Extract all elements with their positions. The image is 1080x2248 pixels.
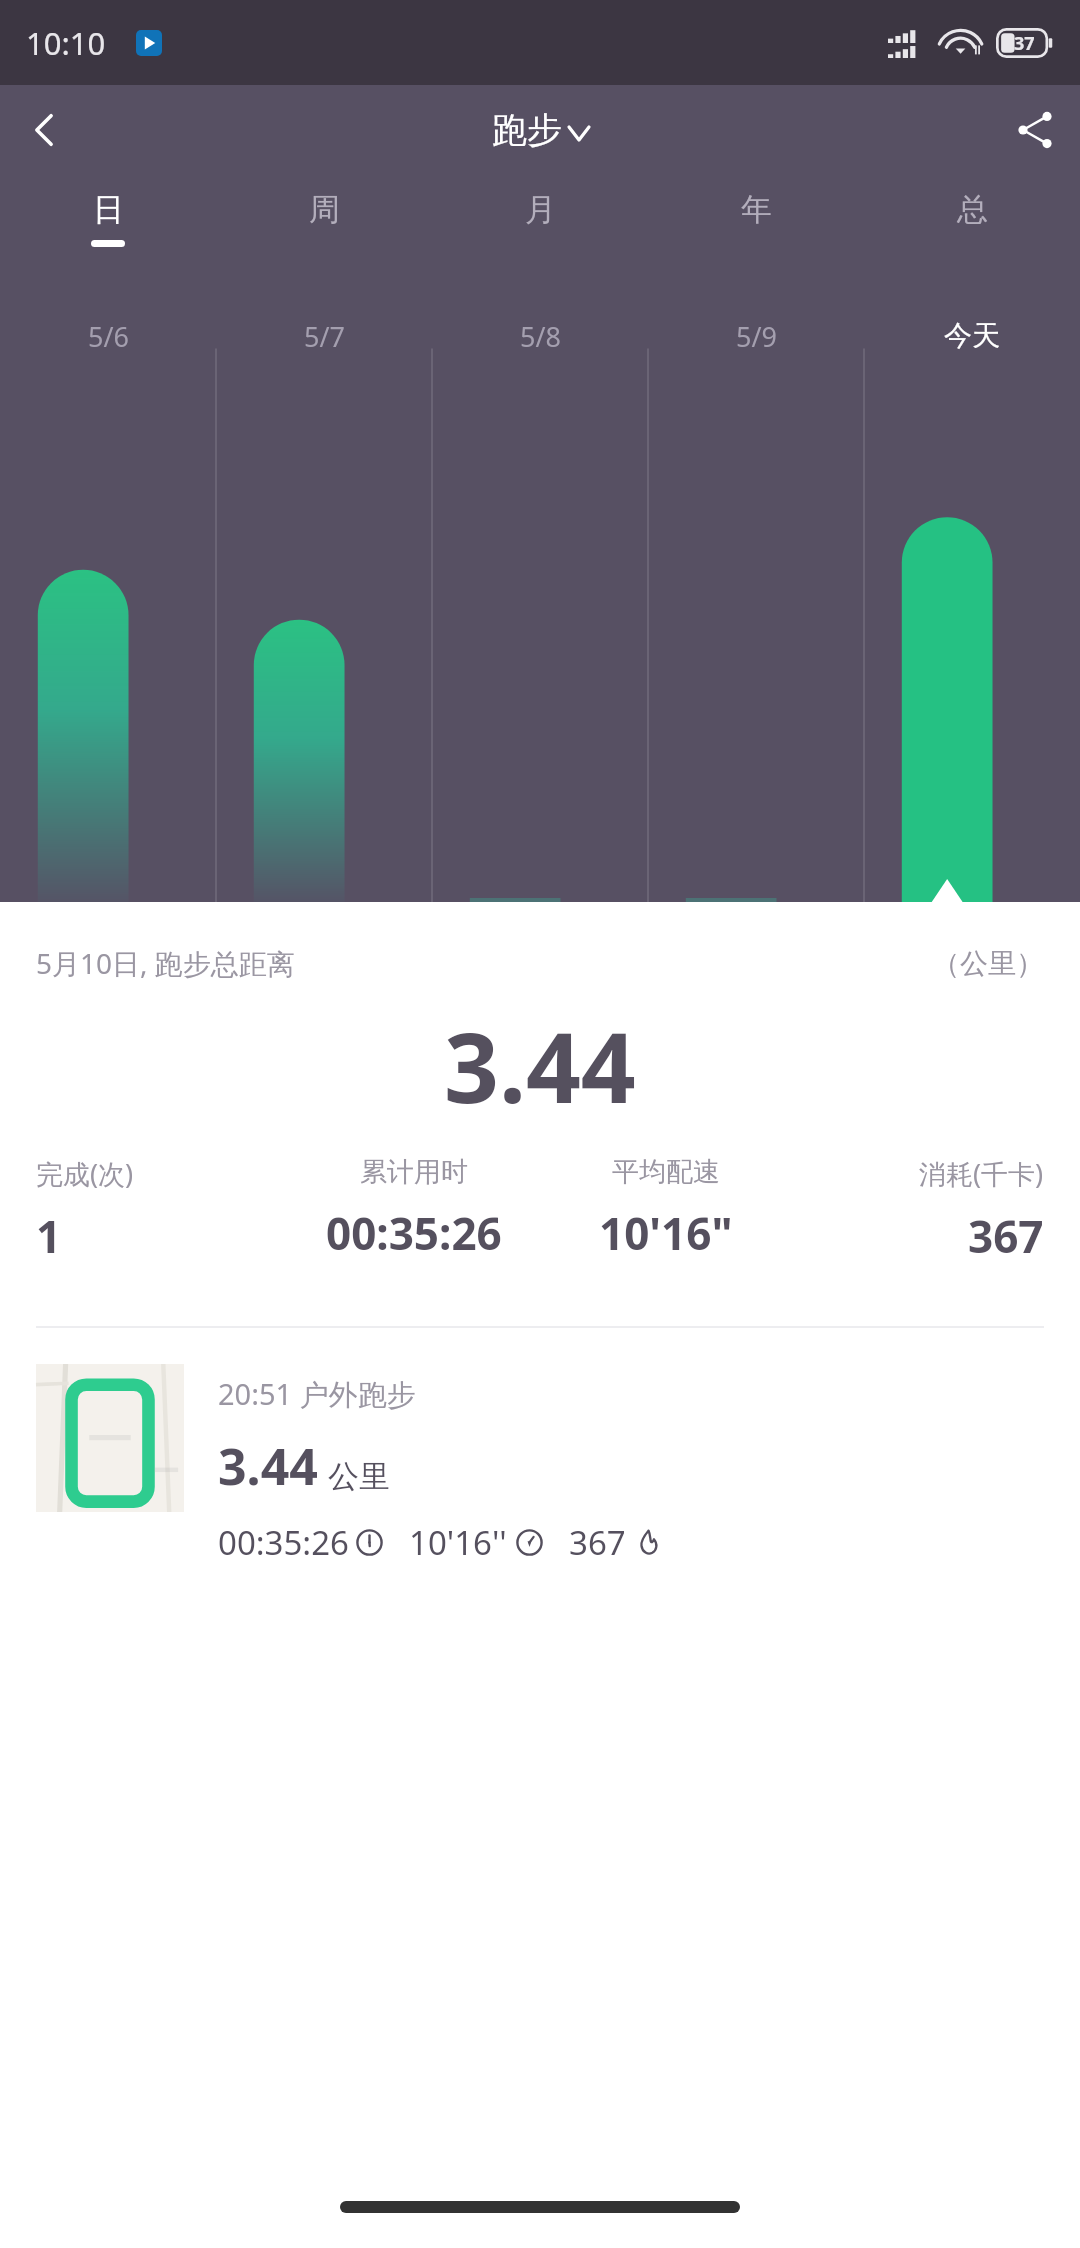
staticText: 累计用时: [360, 1155, 468, 1189]
staticText: 10:10: [26, 22, 106, 64]
staticText: 3.44: [444, 1000, 636, 1131]
staticText: 日: [93, 190, 124, 229]
staticText: 消耗(千卡): [919, 1155, 1044, 1192]
staticText: 年: [741, 190, 772, 229]
staticText: 5/9: [736, 318, 777, 355]
staticText: 10'16": [599, 1203, 733, 1263]
button[interactable]: 总: [864, 175, 1080, 262]
staticText: 5月10日, 跑步总距离: [36, 944, 295, 982]
staticText: （公里）: [932, 946, 1044, 981]
staticText: 平均配速: [612, 1155, 720, 1189]
staticText: 公里: [328, 1457, 390, 1496]
button[interactable]: 20:51 户外跑步: [0, 1328, 1080, 1601]
button[interactable]: 月: [432, 175, 648, 262]
button[interactable]: 日: [0, 175, 216, 262]
staticText: 月: [525, 190, 556, 229]
staticText: 3.44: [218, 1432, 318, 1500]
staticText: 今天: [944, 318, 1000, 353]
button[interactable]: 周: [216, 175, 432, 262]
staticText: 367: [968, 1206, 1044, 1266]
staticText: 周: [309, 190, 340, 229]
button[interactable]: 跑步: [492, 108, 589, 152]
staticText: 总: [957, 190, 988, 229]
staticText: 00:35:26: [218, 1520, 349, 1565]
button[interactable]: 年: [648, 175, 864, 262]
staticText: 1: [36, 1206, 62, 1266]
staticText: 00:35:26: [326, 1203, 502, 1263]
button[interactable]: Share: [990, 85, 1080, 175]
staticText: 10'16'': [409, 1520, 507, 1565]
staticText: 5/7: [304, 318, 345, 355]
staticText: 5/6: [88, 318, 129, 355]
staticText: 20:51 户外跑步: [218, 1374, 416, 1414]
staticText: 完成(次): [36, 1155, 134, 1192]
staticText: 跑步: [492, 108, 562, 152]
button[interactable]: Back: [0, 85, 90, 175]
staticText: 5/8: [520, 318, 561, 355]
staticText: 367: [569, 1520, 626, 1565]
staticText: 37: [1014, 31, 1035, 56]
button[interactable]: Home gesture bar: [340, 2201, 740, 2213]
